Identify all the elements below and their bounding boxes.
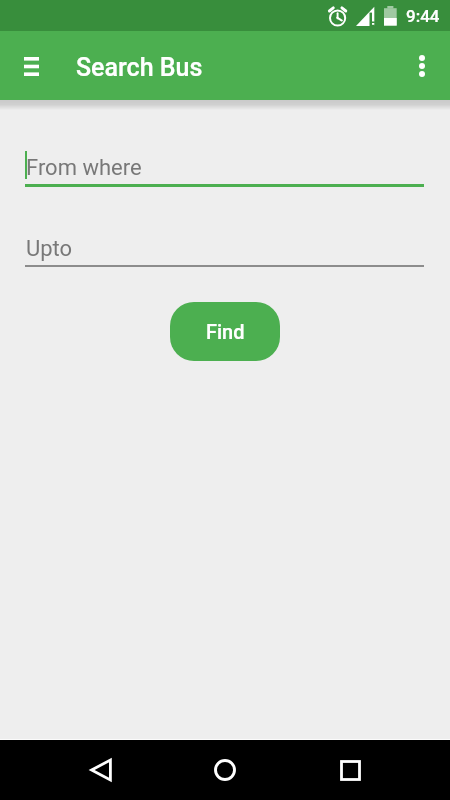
button[interactable]: More options [402, 46, 442, 86]
staticText: From where [26, 155, 142, 181]
staticText: Search Bus [76, 53, 203, 82]
staticText: Find [206, 320, 245, 343]
staticText: Upto [26, 236, 73, 262]
staticText: 9:44 [406, 6, 440, 26]
button[interactable]: Back [81, 750, 121, 790]
button[interactable]: Recent apps [330, 750, 370, 790]
button[interactable]: Open navigation menu [11, 46, 51, 86]
button[interactable]: Find [170, 302, 280, 361]
button[interactable]: Home [205, 750, 245, 790]
